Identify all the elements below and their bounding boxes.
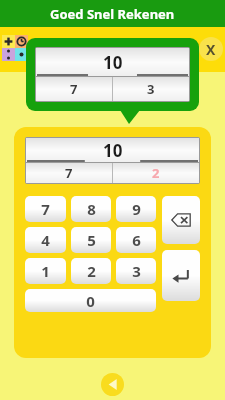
- button[interactable]: 2: [71, 258, 111, 284]
- button[interactable]: 6: [116, 227, 156, 253]
- button[interactable]: 3: [116, 258, 156, 284]
- staticText: 3: [132, 261, 141, 281]
- button[interactable]: 7: [25, 196, 66, 222]
- button[interactable]: 4: [25, 227, 66, 253]
- staticText: 7: [65, 164, 73, 182]
- staticText: 10: [103, 51, 123, 74]
- button[interactable]: 8: [71, 196, 111, 222]
- staticText: 3: [147, 80, 155, 98]
- button[interactable]: 0: [25, 289, 156, 312]
- staticText: Goed Snel Rekenen: [50, 5, 175, 23]
- button[interactable]: Backspace: [162, 196, 200, 244]
- button[interactable]: 9: [116, 196, 156, 222]
- staticText: 10: [103, 139, 123, 162]
- staticText: 2: [87, 261, 96, 281]
- staticText: X: [206, 40, 216, 59]
- staticText: 5: [87, 230, 96, 250]
- button[interactable]: Back: [101, 373, 124, 396]
- button[interactable]: Math modes: [2, 35, 28, 61]
- staticText: 7: [41, 199, 50, 219]
- staticText: 7: [70, 80, 78, 98]
- button[interactable]: Enter: [162, 250, 200, 301]
- staticText: 9: [132, 199, 141, 219]
- staticText: 2: [152, 164, 160, 182]
- staticText: 6: [132, 230, 141, 250]
- staticText: 0: [86, 291, 95, 311]
- button[interactable]: Close: [199, 37, 223, 61]
- button[interactable]: 5: [71, 227, 111, 253]
- button[interactable]: 1: [25, 258, 66, 284]
- staticText: 1: [41, 261, 50, 281]
- staticText: 4: [41, 230, 50, 250]
- staticText: 8: [87, 199, 96, 219]
